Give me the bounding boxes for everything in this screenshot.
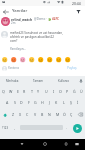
staticText: F [28,100,30,105]
button[interactable]: Merhaba [0,76,25,85]
staticText: Ğ [73,89,76,94]
button[interactable]: Tamam [25,76,51,85]
button[interactable]: J [46,97,53,108]
staticText: L [63,100,65,105]
button[interactable]: F [25,97,32,108]
button[interactable]: Comma [10,125,18,131]
button[interactable]: V [32,109,39,120]
staticText: @Demo · [34,17,47,21]
button[interactable]: Ğ [71,86,78,97]
staticText: B [41,112,44,117]
button[interactable]: Emoji reaction [10,56,16,62]
button[interactable]: B [39,109,46,120]
staticText: ?123 [2,126,9,130]
button[interactable]: Recents [61,139,71,149]
staticText: N [48,112,51,117]
staticText: U [45,89,48,94]
staticText: 2m [11,21,16,25]
staticText: Kullanıcı [58,79,70,83]
button[interactable]: Ü [78,86,85,97]
button[interactable]: R [21,86,28,97]
staticText: X [19,112,22,117]
button[interactable]: Home [40,139,50,149]
button[interactable]: C [24,109,31,120]
staticText: İ [77,100,79,105]
staticText: 20:44 [72,1,81,6]
button[interactable]: Q [0,86,7,97]
staticText: I [53,89,55,94]
button[interactable]: Kullanıcı [51,76,77,85]
button[interactable]: Emoji reaction [64,56,70,62]
button[interactable]: Emoji reaction [46,56,52,62]
staticText: W [9,89,13,94]
button[interactable]: Period [63,125,70,131]
staticText: Yanıtınız [8,66,19,70]
staticText: J [49,100,50,105]
button[interactable]: T [28,86,35,97]
button[interactable]: Voice input [77,76,85,85]
button[interactable]: Ş [67,97,74,108]
staticText: V [34,112,37,117]
button[interactable]: P [64,86,71,97]
button[interactable]: ?123 [0,122,10,134]
button[interactable]: S [11,97,18,108]
button[interactable]: M [54,109,61,120]
staticText: Ü [80,89,83,94]
button[interactable]: Emoji reaction [19,56,25,62]
button[interactable]: O [57,86,64,97]
staticText: T [31,89,33,94]
button[interactable]: Emoji reaction [1,56,7,62]
button[interactable]: Emoji reaction [55,56,61,62]
button[interactable]: Switch keyboard [73,140,80,147]
staticText: . [66,126,67,130]
staticText: Ö [63,112,66,117]
button[interactable]: K [53,97,60,108]
button[interactable]: İ [74,97,81,108]
staticText: Y [37,89,40,94]
button[interactable]: Ö [61,109,68,120]
staticText: P [66,89,69,94]
button[interactable]: N [46,109,53,120]
staticText: Ş [70,100,72,105]
button[interactable]: W [7,86,14,97]
button[interactable]: L [60,97,67,108]
button[interactable]: Back [1,7,10,16]
button[interactable]: D [18,97,25,108]
button[interactable]: A [4,97,11,108]
button[interactable]: Z [10,109,17,120]
staticText: afchtrk ve paslıgan abucilbot22 [10,35,54,39]
button[interactable]: Ç [68,109,75,120]
button[interactable]: Paylaş [66,65,78,71]
button[interactable]: H [39,97,46,108]
button[interactable]: Emoji reaction [37,56,43,62]
staticText: Merhaba [6,79,19,83]
button[interactable]: Filter [74,7,83,16]
staticText: Z [12,112,15,117]
staticText: D [20,100,23,105]
button[interactable]: X [17,109,24,120]
button[interactable]: Send [73,124,82,133]
staticText: E [17,89,19,94]
staticText: 4LFC [52,17,59,21]
staticText: Yanıtlar [12,8,28,14]
button[interactable]: G [32,97,39,108]
button[interactable]: Backspace [76,109,85,120]
staticText: R [23,89,26,94]
staticText: H [41,100,44,105]
button[interactable]: Back [17,139,27,149]
staticText: O [59,89,62,94]
staticText: Yanıtlayın... [10,47,26,51]
button[interactable]: U [43,86,50,97]
staticText: G [34,100,37,105]
staticText: mefted23 Sonuhoot ve uzt hasarıdan, [10,31,63,35]
staticText: Paylaş [67,66,77,70]
staticText: , [14,126,15,130]
staticText: com? [10,39,18,43]
button[interactable]: Shift [0,109,9,120]
button[interactable]: Emoji reaction [28,56,34,62]
button[interactable]: I [50,86,57,97]
button[interactable]: Y [35,86,42,97]
staticText: M [56,112,60,117]
button[interactable]: E [14,86,21,97]
